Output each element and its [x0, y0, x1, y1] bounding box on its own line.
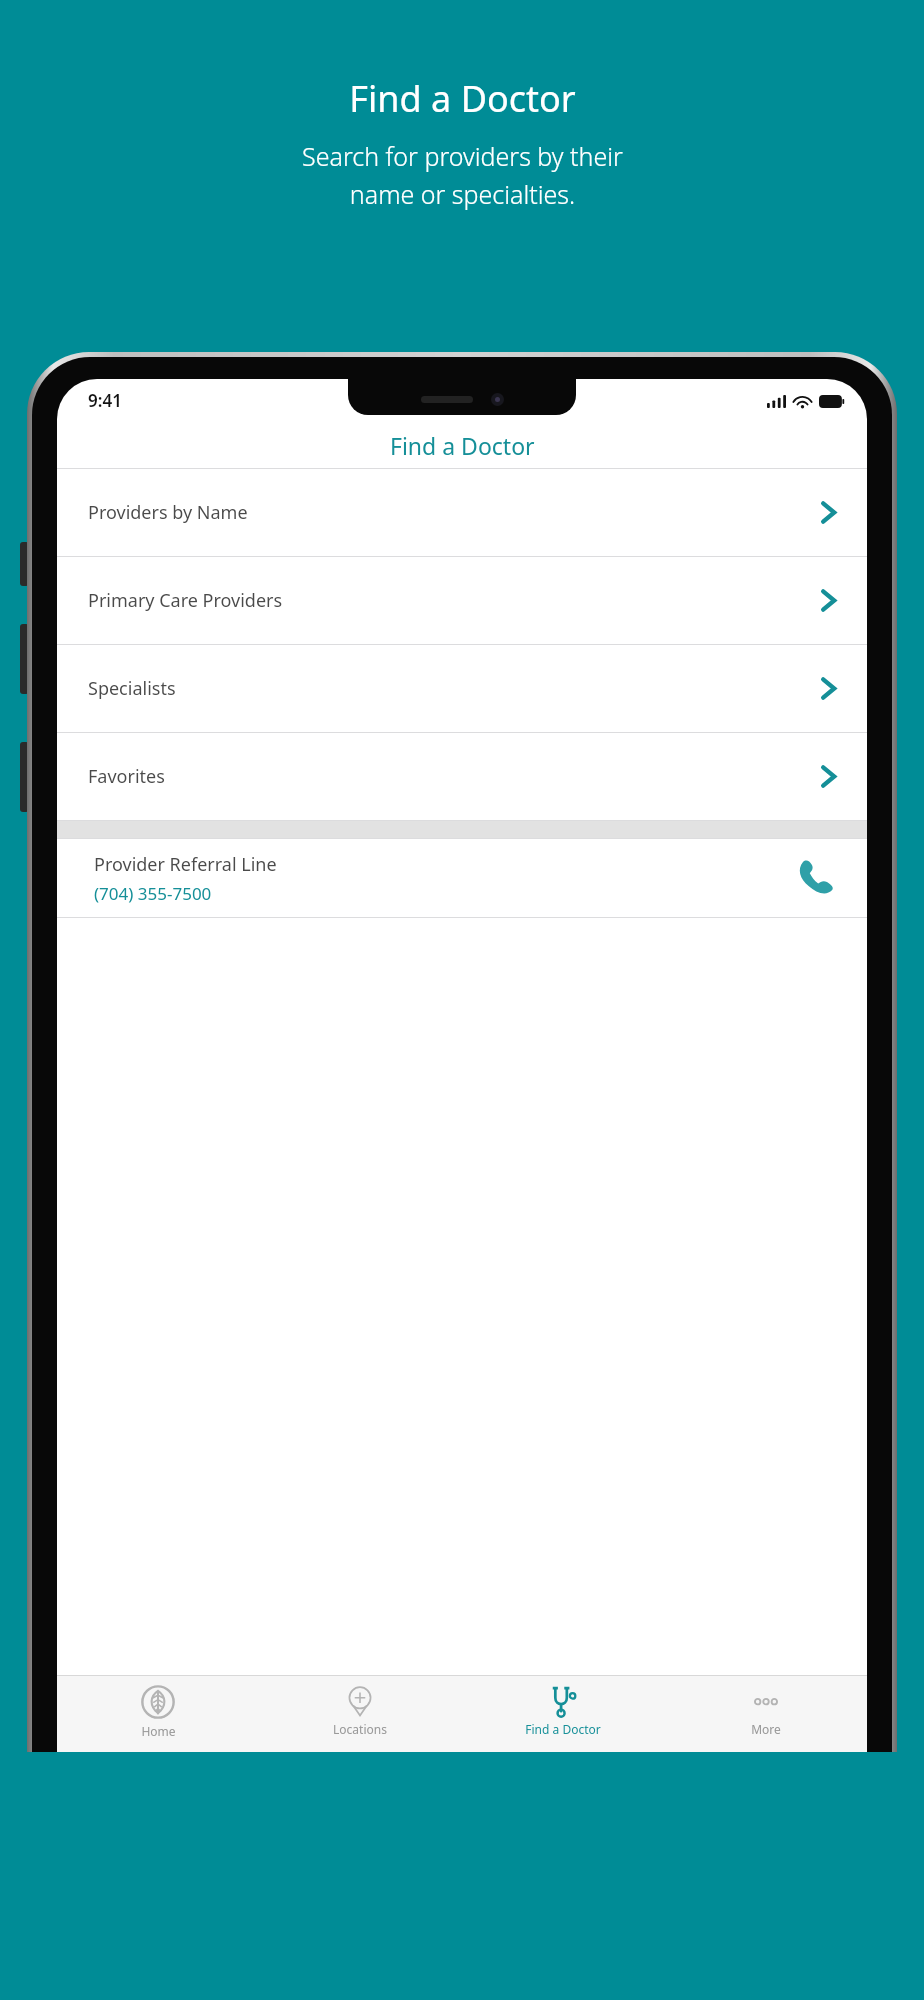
- button[interactable]: Home: [57, 1676, 259, 1752]
- staticText: Find a Doctor: [390, 430, 535, 461]
- button[interactable]: Providers by Name: [57, 469, 867, 556]
- staticText: Search for providers by their name or sp…: [302, 139, 623, 211]
- button[interactable]: Primary Care Providers: [57, 557, 867, 644]
- button[interactable]: Find a Doctor: [461, 1676, 664, 1752]
- staticText: 9:41: [88, 389, 122, 412]
- staticText: Home: [141, 1723, 176, 1739]
- staticText: (704) 355-7500: [94, 882, 212, 905]
- staticText: Specialists: [88, 676, 819, 701]
- staticText: More: [751, 1721, 781, 1737]
- button[interactable]: Locations: [259, 1676, 461, 1752]
- staticText: Find a Doctor: [349, 74, 576, 123]
- button[interactable]: Provider Referral Line: [57, 839, 867, 917]
- staticText: Find a Doctor: [525, 1721, 601, 1737]
- button[interactable]: More: [664, 1676, 867, 1752]
- staticText: Primary Care Providers: [88, 588, 819, 613]
- button[interactable]: Favorites: [57, 733, 867, 820]
- button[interactable]: Specialists: [57, 645, 867, 732]
- staticText: Locations: [333, 1721, 387, 1737]
- other: Call provider referral line: [792, 855, 838, 901]
- staticText: Provider Referral Line: [94, 852, 277, 877]
- staticText: Favorites: [88, 764, 819, 789]
- staticText: Providers by Name: [88, 500, 819, 525]
